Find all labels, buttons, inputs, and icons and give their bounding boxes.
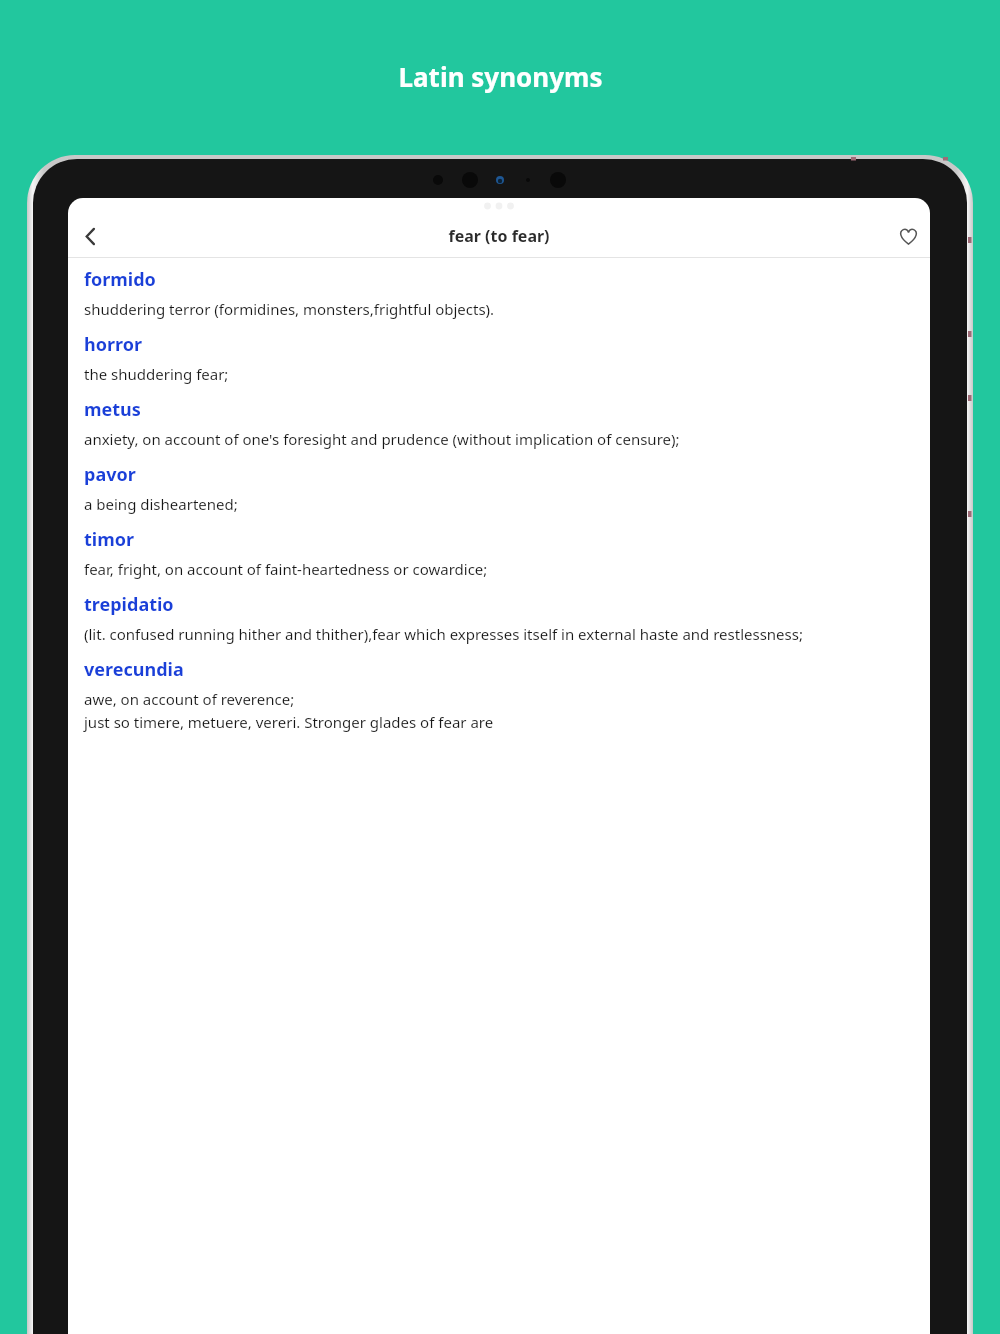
staticText: (lit. confused running hither and thithe… (84, 624, 803, 644)
staticText: anxiety, on account of one's foresight a… (84, 429, 680, 449)
button[interactable]: horror (84, 332, 916, 397)
staticText: horror (84, 332, 142, 357)
button[interactable]: verecundia (84, 657, 916, 745)
staticText: the shuddering fear; (84, 364, 229, 384)
staticText: trepidatio (84, 592, 174, 617)
staticText: awe, on account of reverence; (84, 689, 295, 709)
button[interactable]: pavor (84, 462, 916, 527)
staticText: timor (84, 527, 135, 552)
staticText: shuddering terror (formidines, monsters,… (84, 299, 495, 319)
staticText: fear (to fear) (448, 225, 550, 247)
button[interactable]: timor (84, 527, 916, 592)
button[interactable]: formido (84, 267, 916, 332)
staticText: metus (84, 397, 141, 422)
button[interactable]: Favorite (886, 214, 930, 258)
staticText: a being disheartened; (84, 494, 238, 514)
button[interactable]: Back (68, 214, 112, 258)
staticText: formido (84, 267, 156, 292)
staticText: Latin synonyms (398, 59, 603, 94)
button[interactable]: trepidatio (84, 592, 916, 657)
staticText: verecundia (84, 657, 184, 682)
staticText: fear, fright, on account of faint-hearte… (84, 559, 488, 579)
button[interactable]: metus (84, 397, 916, 462)
staticText: pavor (84, 462, 136, 487)
staticText: just so timere, metuere, vereri. Stronge… (84, 712, 494, 732)
